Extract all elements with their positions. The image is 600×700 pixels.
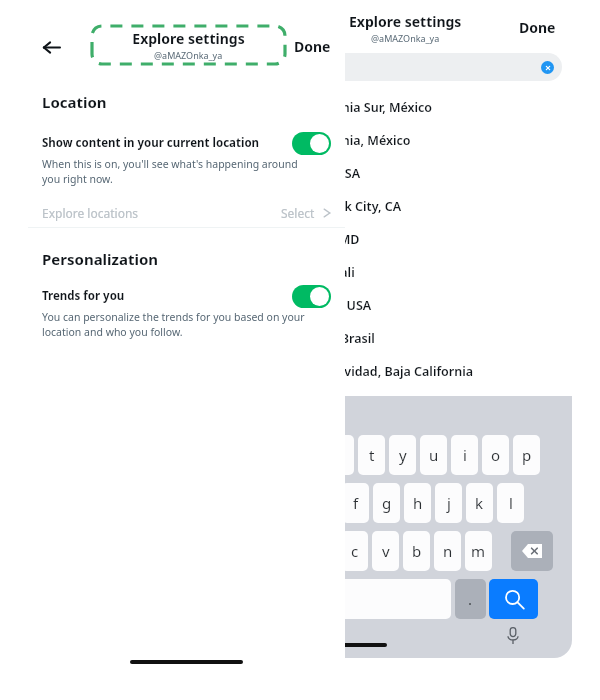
staticText: Show content in your current location — [42, 135, 292, 151]
staticText: @aMAZOnka_ya — [371, 32, 440, 44]
button[interactable]: Toggle on — [292, 132, 331, 155]
staticText: Baker, CA, USA — [272, 165, 361, 182]
staticText: h — [413, 493, 423, 513]
staticText: p — [522, 445, 532, 465]
staticText: g — [382, 493, 392, 513]
staticText: Trends for you — [42, 288, 292, 304]
button[interactable]: t — [358, 435, 385, 475]
button[interactable]: m — [465, 531, 492, 571]
staticText: b — [412, 541, 422, 561]
button[interactable]: Toggle on — [292, 285, 331, 308]
button[interactable]: Clear search — [268, 53, 562, 81]
staticText: k — [475, 493, 484, 513]
staticText: y — [399, 445, 407, 465]
button[interactable]: Show content in your current location — [28, 124, 345, 162]
staticText: l — [509, 493, 513, 513]
staticText: v — [382, 541, 390, 561]
button[interactable]: Baldwin Park City, CA — [258, 190, 572, 223]
button[interactable]: u — [420, 435, 447, 475]
button[interactable]: Barra de Navidad, Baja California — [258, 355, 572, 388]
staticText: Baja California, México — [272, 132, 411, 149]
button[interactable]: Done — [515, 14, 560, 41]
staticText: o — [491, 445, 501, 465]
button[interactable]: Baltimore, MD — [258, 223, 572, 256]
staticText: Baldwin Park City, CA — [272, 198, 402, 215]
staticText: f — [353, 493, 359, 513]
button[interactable]: r — [327, 435, 354, 475]
staticText: @aMAZOnka_ya — [154, 49, 223, 61]
staticText: Done — [519, 18, 556, 37]
button[interactable]: . — [455, 579, 486, 619]
button[interactable]: i — [451, 435, 478, 475]
button[interactable]: h — [404, 483, 431, 523]
button[interactable]: Explore settings — [92, 26, 285, 64]
button[interactable]: Dictate — [501, 624, 525, 648]
button[interactable]: f — [342, 483, 369, 523]
button[interactable]: Bamako, Mali — [258, 256, 572, 289]
button[interactable]: Trends for you — [28, 279, 345, 313]
staticText: Explore settings — [132, 29, 245, 48]
staticText: Barra de Navidad, Baja California — [272, 363, 474, 380]
staticText: Bangor, ME, USA — [272, 297, 372, 314]
button[interactable]: Done — [290, 33, 335, 60]
staticText: Bamako, Mali — [272, 264, 355, 281]
button[interactable]: Baja California, México — [258, 124, 572, 157]
button[interactable]: Barcarena, Brasil — [258, 322, 572, 355]
staticText: c — [351, 541, 359, 561]
button[interactable]: y — [389, 435, 416, 475]
button[interactable]: l — [497, 483, 524, 523]
button[interactable]: n — [434, 531, 461, 571]
button[interactable]: Baker, CA, USA — [258, 157, 572, 190]
staticText: u — [429, 445, 439, 465]
staticText: Personalization — [42, 249, 159, 269]
button[interactable]: p — [513, 435, 540, 475]
staticText: Explore locations — [42, 205, 281, 221]
staticText: Explore settings — [349, 12, 462, 31]
button[interactable]: Backspace — [511, 531, 553, 571]
staticText: Location — [42, 92, 107, 112]
button[interactable]: g — [373, 483, 400, 523]
staticText: You can personalize the trends for you b… — [42, 310, 306, 339]
staticText: Baltimore, MD — [272, 231, 360, 248]
button[interactable]: j — [435, 483, 462, 523]
staticText: Baja California Sur, México — [272, 99, 433, 116]
staticText: m — [471, 541, 486, 561]
button[interactable]: Bangor, ME, USA — [258, 289, 572, 322]
staticText: Barcarena, Brasil — [272, 330, 375, 347]
button[interactable]: Back — [36, 32, 66, 62]
button[interactable]: Baja California Sur, México — [258, 91, 572, 124]
button[interactable]: v — [372, 531, 399, 571]
button[interactable]: o — [482, 435, 509, 475]
button[interactable]: c — [341, 531, 368, 571]
staticText: Done — [294, 37, 331, 56]
staticText: t — [369, 445, 375, 465]
button[interactable]: Search — [489, 579, 538, 619]
other: Clear search — [541, 61, 554, 74]
staticText: j — [447, 493, 451, 513]
staticText: i — [463, 445, 467, 465]
staticText: n — [443, 541, 453, 561]
button[interactable]: b — [403, 531, 430, 571]
button[interactable]: Explore locations — [28, 199, 345, 227]
staticText: . — [468, 589, 473, 609]
staticText: Select — [281, 205, 315, 221]
button[interactable]: k — [466, 483, 493, 523]
staticText: When this is on, you'll see what's happe… — [42, 157, 314, 186]
